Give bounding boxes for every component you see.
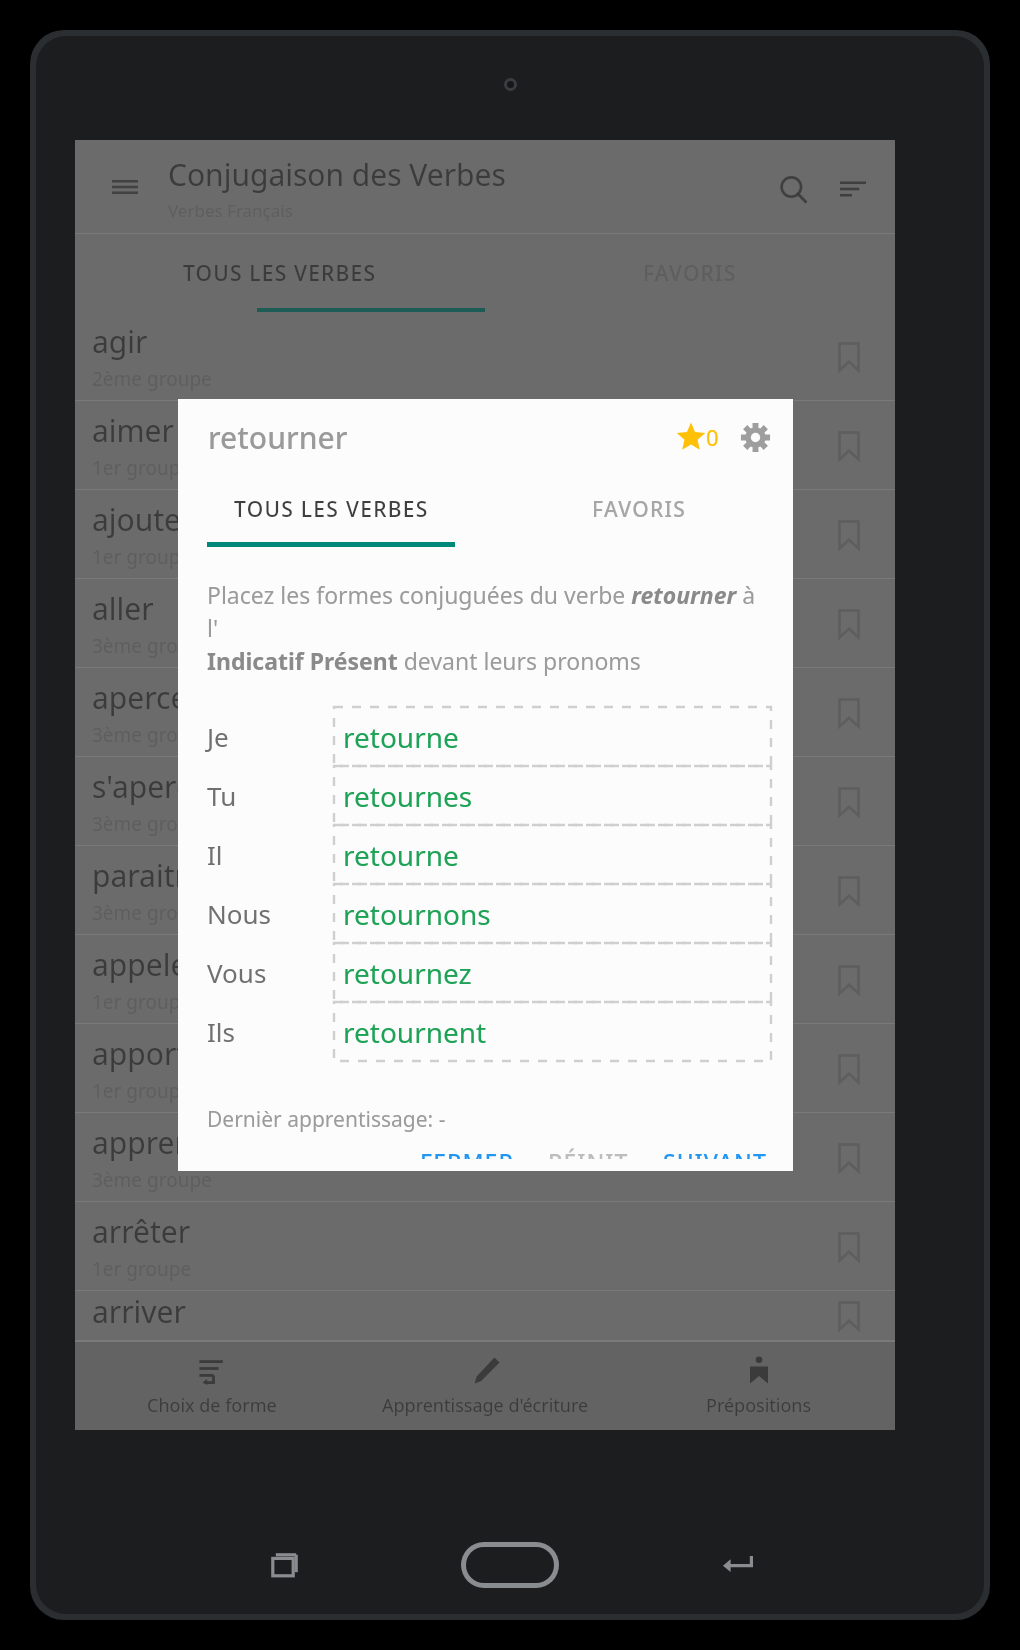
staticText: s'apercevoir (92, 766, 261, 807)
staticText: 1er groupe (92, 544, 192, 570)
staticText: Dernièr apprentissage: - (207, 1105, 446, 1134)
button[interactable]: retournes (334, 766, 771, 825)
button[interactable]: 0 (672, 416, 723, 458)
button[interactable]: Back (704, 1532, 770, 1598)
button[interactable]: ajouter (75, 490, 895, 579)
staticText: 3ème groupe (92, 722, 212, 748)
staticText: Vous (207, 955, 334, 990)
button[interactable]: retourne (334, 707, 771, 766)
button[interactable]: TOUS LES VERBES (75, 234, 485, 312)
button[interactable]: paraitre (75, 846, 895, 935)
staticText: Conjugaison des Verbes (168, 154, 506, 195)
button[interactable]: Bookmark (823, 776, 875, 828)
button[interactable]: Choix de forme (75, 1342, 349, 1430)
staticText: ajouter (92, 499, 194, 540)
button[interactable]: Apprentissage d'écriture (349, 1342, 622, 1430)
staticText: appeler (92, 944, 200, 985)
button[interactable]: retournez (334, 943, 771, 1002)
button[interactable]: Bookmark (823, 331, 875, 383)
button[interactable]: Home (455, 1536, 565, 1594)
staticText: Il (207, 837, 334, 872)
button[interactable]: Bookmark (823, 1043, 875, 1095)
button[interactable]: Recents (250, 1532, 316, 1598)
button[interactable]: Sort (823, 159, 883, 219)
staticText: FERMER (420, 1146, 514, 1159)
staticText: Placez les formes conjuguées du verbe re… (207, 579, 769, 677)
button[interactable]: Settings (733, 415, 777, 459)
staticText: 3ème groupe (92, 900, 212, 926)
button[interactable]: FAVORIS (485, 472, 793, 547)
button[interactable]: apporter (75, 1024, 895, 1113)
button[interactable]: Bookmark (823, 687, 875, 739)
staticText: TOUS LES VERBES (234, 495, 429, 524)
button[interactable]: Search (763, 159, 823, 219)
staticText: TOUS LES VERBES (183, 259, 377, 288)
button[interactable]: Menu (97, 159, 153, 215)
staticText: retournent (343, 1013, 487, 1051)
staticText: Choix de forme (147, 1393, 277, 1418)
staticText: FAVORIS (643, 259, 737, 288)
button[interactable]: TOUS LES VERBES (178, 472, 485, 547)
staticText: RÉINIT (548, 1146, 629, 1159)
staticText: retourner (208, 417, 348, 458)
staticText: 3ème groupe (92, 1167, 212, 1193)
staticText: 3ème groupe (92, 811, 212, 837)
staticText: arrêter (92, 1211, 191, 1252)
button[interactable]: SUIVANT (649, 1134, 781, 1171)
button[interactable]: Bookmark (823, 865, 875, 917)
button[interactable]: apprendre (75, 1113, 895, 1202)
staticText: apercevoir (92, 677, 241, 718)
button[interactable]: arriver (75, 1291, 895, 1341)
staticText: 1er groupe (92, 989, 192, 1015)
staticText: Ils (207, 1014, 334, 1049)
button[interactable]: Bookmark (823, 1132, 875, 1184)
staticText: Prépositions (706, 1393, 812, 1418)
staticText: retournez (343, 954, 472, 992)
staticText: FAVORIS (592, 495, 687, 524)
button[interactable]: Bookmark (823, 420, 875, 472)
staticText: agir (92, 321, 148, 362)
staticText: 2ème groupe (92, 366, 212, 392)
staticText: retourne (343, 718, 459, 756)
button[interactable]: s'apercevoir (75, 757, 895, 846)
button[interactable]: Bookmark (823, 598, 875, 650)
staticText: 1er groupe (92, 455, 192, 481)
staticText: aller (92, 588, 154, 629)
button[interactable]: agir (75, 312, 895, 401)
button[interactable]: retournons (334, 884, 771, 943)
button[interactable]: retournent (334, 1002, 771, 1061)
staticText: apprendre (92, 1122, 241, 1163)
button[interactable]: aller (75, 579, 895, 668)
button[interactable]: Bookmark (823, 954, 875, 1006)
staticText: retournons (343, 895, 491, 933)
staticText: paraitre (92, 855, 204, 896)
staticText: aimer (92, 410, 174, 451)
button[interactable]: arrêter (75, 1202, 895, 1291)
staticText: 1er groupe (92, 1256, 192, 1282)
staticText: retourne (343, 836, 459, 874)
staticText: 0 (706, 422, 719, 452)
staticText: apporter (92, 1033, 217, 1074)
button[interactable]: RÉINIT (534, 1134, 643, 1171)
staticText: 1er groupe (92, 1336, 192, 1341)
button[interactable]: appeler (75, 935, 895, 1024)
staticText: Apprentissage d'écriture (382, 1393, 589, 1418)
button[interactable]: Bookmark (823, 509, 875, 561)
staticText: SUIVANT (663, 1146, 767, 1159)
button[interactable]: Bookmark (823, 1291, 875, 1341)
button[interactable]: aimer (75, 401, 895, 490)
staticText: retournes (343, 777, 473, 815)
staticText: Verbes Français (168, 199, 293, 222)
staticText: Je (207, 719, 334, 754)
staticText: 1er groupe (92, 1078, 192, 1104)
button[interactable]: Prépositions (622, 1342, 895, 1430)
button[interactable]: FERMER (406, 1134, 528, 1171)
staticText: arriver (92, 1291, 186, 1332)
button[interactable]: apercevoir (75, 668, 895, 757)
staticText: Tu (207, 778, 334, 813)
staticText: Nous (207, 896, 334, 931)
staticText: 3ème groupe (92, 633, 212, 659)
button[interactable]: Bookmark (823, 1221, 875, 1273)
button[interactable]: retourne (334, 825, 771, 884)
